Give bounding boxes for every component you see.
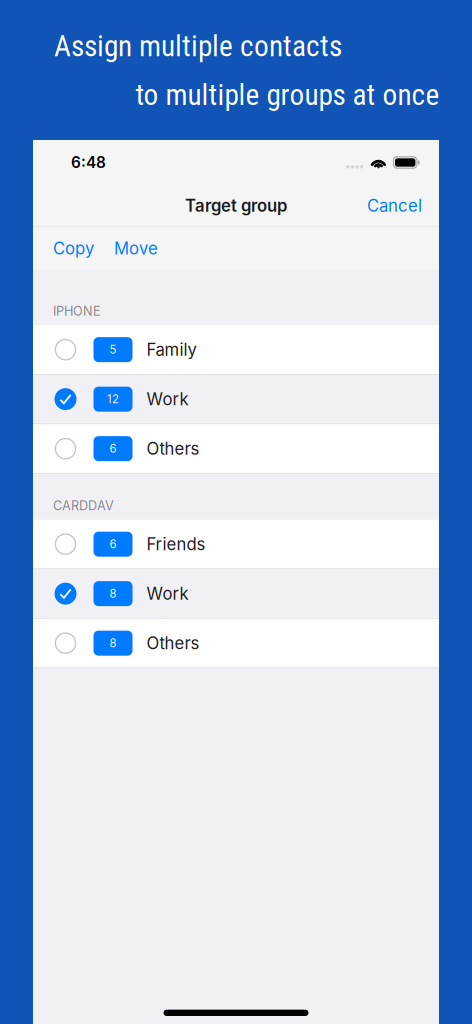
staticText: to multiple groups at once (135, 78, 439, 112)
staticText: Family (146, 340, 196, 360)
staticText: 12 (107, 392, 119, 406)
staticText: 6:48 (71, 153, 106, 172)
button[interactable]: 12 (33, 375, 439, 424)
button[interactable]: 6 (33, 424, 439, 474)
staticText: 8 (109, 636, 116, 650)
staticText: 6 (109, 442, 116, 455)
staticText: Work (146, 389, 188, 409)
staticText: 6 (109, 537, 116, 551)
staticText: Cancel (367, 196, 422, 216)
staticText: Target group (185, 196, 287, 216)
staticText: Others (146, 633, 199, 653)
staticText: 8 (109, 587, 116, 600)
button[interactable]: Move (109, 230, 163, 267)
button[interactable]: Cancel (361, 189, 428, 223)
button[interactable]: Copy (48, 230, 99, 267)
staticText: Assign multiple contacts (54, 29, 342, 63)
staticText: IPHONE (53, 303, 101, 319)
staticText: Others (146, 439, 199, 459)
staticText: 5 (109, 343, 116, 356)
staticText: Move (114, 238, 158, 259)
staticText: Friends (146, 534, 205, 554)
staticText: CARDDAV (53, 498, 114, 513)
button[interactable]: 8 (33, 569, 439, 619)
staticText: Work (146, 584, 188, 604)
button[interactable]: 5 (33, 325, 439, 375)
staticText: Copy (53, 238, 94, 259)
button[interactable]: 6 (33, 520, 439, 569)
button[interactable]: 8 (33, 619, 439, 668)
